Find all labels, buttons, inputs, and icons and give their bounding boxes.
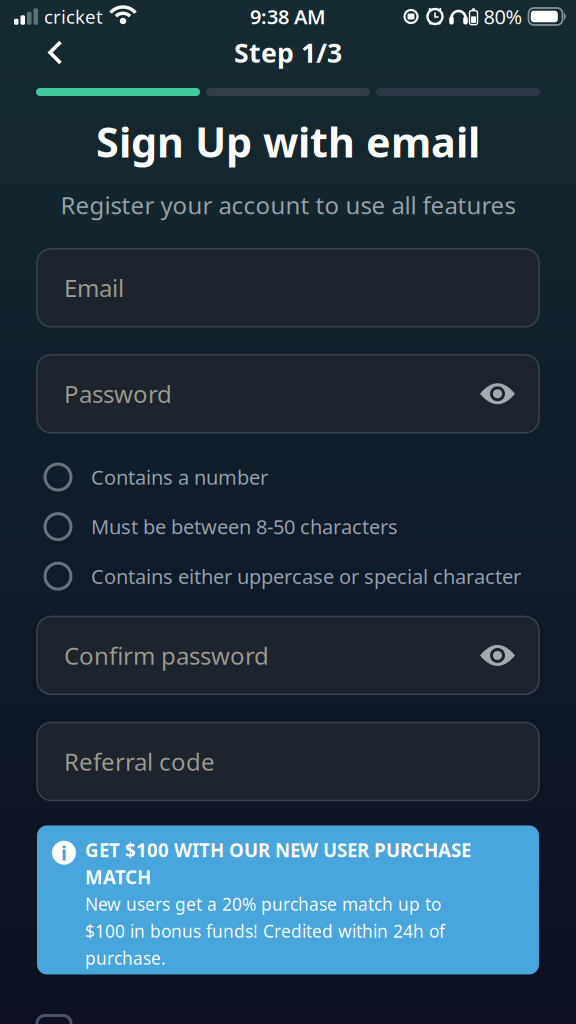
- staticText: $100 in bonus funds! Credited within 24h…: [85, 919, 445, 942]
- staticText: Referral code: [64, 745, 215, 777]
- staticText: Sign Up with email: [96, 114, 480, 169]
- staticText: 9:38 AM: [250, 3, 326, 30]
- staticText: GET $100 WITH OUR NEW USER PURCHASE: [85, 837, 471, 862]
- textField[interactable]: Referral code: [64, 745, 289, 777]
- staticText: Step 1/3: [234, 35, 342, 70]
- staticText: Password: [64, 378, 172, 410]
- staticText: New users get a 20% purchase match up to: [85, 892, 441, 915]
- staticText: i: [61, 839, 67, 866]
- staticText: Confirm password: [64, 639, 269, 671]
- staticText: Must be between 8-50 characters: [91, 513, 398, 540]
- textField[interactable]: Email: [64, 272, 289, 304]
- staticText: 80%: [483, 3, 522, 30]
- staticText: cricket: [44, 4, 103, 29]
- button[interactable]: Back: [0, 42, 63, 63]
- textField[interactable]: Password: [64, 378, 272, 410]
- staticText: Email: [64, 272, 124, 304]
- staticText: Contains either uppercase or special cha…: [91, 563, 521, 589]
- button[interactable]: Show password: [480, 381, 515, 406]
- staticText: MATCH: [85, 864, 151, 889]
- button[interactable]: Agree to terms: [37, 1015, 71, 1024]
- textField[interactable]: Confirm password: [64, 639, 272, 671]
- staticText: Register your account to use all feature…: [60, 189, 515, 221]
- staticText: Contains a number: [91, 464, 268, 490]
- staticText: purchase.: [85, 946, 166, 969]
- button[interactable]: Show password: [480, 643, 515, 668]
